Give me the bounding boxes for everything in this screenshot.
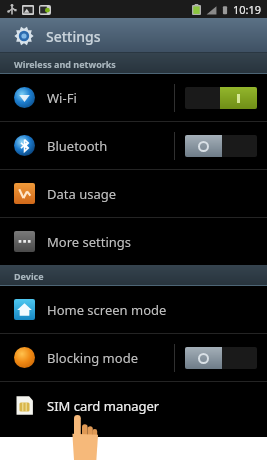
staticText: Home screen mode [47,301,257,319]
staticText: Wi-Fi [47,89,174,107]
button[interactable]: Blocking mode [0,334,267,381]
staticText: SIM card manager [47,397,257,415]
button[interactable]: SIM card manager [0,382,267,429]
button[interactable]: More settings [0,218,267,265]
other: Data usage [14,183,35,204]
button[interactable]: Switch off [185,135,257,157]
button[interactable]: Bluetooth [0,122,267,169]
staticText: Settings [46,27,101,46]
other: More settings [14,231,35,252]
button[interactable]: Data usage [0,170,267,217]
staticText: 10:19 [233,2,262,17]
staticText: Blocking mode [47,349,174,367]
button[interactable]: Settings [0,18,267,53]
staticText: Bluetooth [47,137,174,155]
staticText: Wireless and networks [14,58,116,70]
button[interactable]: Home screen mode [0,286,267,333]
staticText: More settings [47,233,257,251]
staticText: Data usage [47,185,257,203]
other: Wi-Fi [14,87,35,108]
button[interactable]: Wi-Fi [0,74,267,121]
other: Bluetooth [14,135,35,156]
button[interactable]: Switch off [185,347,257,369]
button[interactable]: Switch on [185,87,257,109]
other: SIM card manager [14,395,35,416]
other: Home screen mode [14,299,35,320]
staticText: Device [14,270,44,282]
other: Blocking mode [14,347,35,368]
